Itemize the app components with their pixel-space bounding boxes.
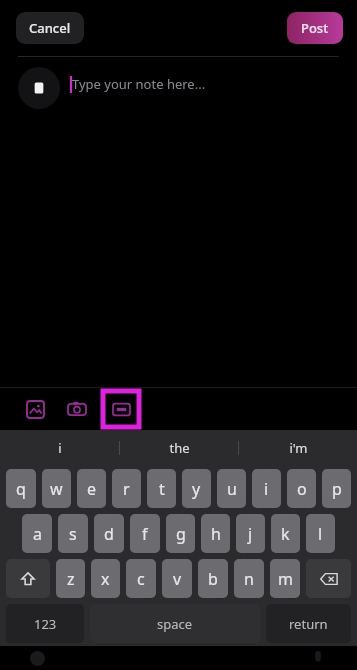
staticText: s [69,523,77,545]
button[interactable]: r [112,469,141,508]
button[interactable]: d [94,514,124,553]
staticText: j [248,523,253,545]
staticText: a [33,523,42,545]
staticText: k [281,523,290,545]
button[interactable]: m [270,559,300,598]
button[interactable]: Post [287,12,343,44]
button[interactable]: a [22,514,52,553]
button[interactable]: x [91,559,120,598]
button[interactable]: p [322,469,351,508]
button[interactable]: i'm [239,430,357,466]
button[interactable]: Cancel [16,12,84,44]
button[interactable]: i [0,430,119,466]
staticText: Type your note here... [72,75,206,93]
staticText: q [16,478,26,500]
button[interactable]: Emoji [28,649,46,667]
button[interactable]: j [236,514,265,553]
staticText: 123 [34,615,57,633]
staticText: d [104,523,114,545]
button[interactable]: q [6,469,36,508]
button[interactable]: b [198,559,228,598]
button[interactable]: s [58,514,88,553]
staticText: i [264,478,269,500]
button[interactable]: c [126,559,156,598]
button[interactable]: Backspace [306,559,351,598]
button[interactable]: v [162,559,192,598]
button[interactable]: e [77,469,106,508]
staticText: space [157,615,193,633]
button[interactable]: Add GIF [101,389,141,429]
button[interactable]: o [287,469,316,508]
button[interactable]: Take photo [64,396,90,422]
staticText: v [173,568,182,590]
staticText: n [244,568,254,590]
staticText: b [208,568,218,590]
staticText: t [159,478,165,500]
button[interactable]: return [266,604,351,643]
button[interactable]: w [42,469,71,508]
button[interactable]: l [306,514,335,553]
button[interactable]: h [201,514,230,553]
staticText: c [137,568,145,590]
button[interactable]: t [147,469,176,508]
button[interactable]: the [120,430,238,466]
staticText: e [87,478,97,500]
staticText: w [50,478,63,500]
staticText: Cancel [29,19,71,37]
staticText: p [332,478,342,500]
staticText: the [169,439,190,457]
button[interactable]: z [56,559,85,598]
staticText: i'm [289,439,308,457]
staticText: i [58,439,62,457]
button[interactable]: i [252,469,281,508]
staticText: z [67,568,75,590]
button[interactable]: Voice input [309,649,327,667]
button[interactable]: f [130,514,160,553]
staticText: r [123,478,130,500]
staticText: return [289,615,328,633]
staticText: u [227,478,237,500]
button[interactable]: k [271,514,300,553]
staticText: x [101,568,110,590]
button[interactable]: y [182,469,211,508]
button[interactable]: Profile picture [18,67,60,109]
staticText: h [211,523,221,545]
button[interactable]: g [166,514,195,553]
button[interactable]: Shift [6,559,50,598]
staticText: l [318,523,323,545]
button[interactable]: 123 [6,604,84,643]
staticText: g [176,523,186,545]
staticText: y [192,478,201,500]
staticText: o [297,478,307,500]
button[interactable]: u [217,469,246,508]
button[interactable]: space [90,604,260,643]
staticText: m [278,568,293,590]
staticText: f [142,523,148,545]
button[interactable]: n [234,559,264,598]
staticText: Post [301,19,329,37]
button[interactable]: Add photo [22,396,48,422]
